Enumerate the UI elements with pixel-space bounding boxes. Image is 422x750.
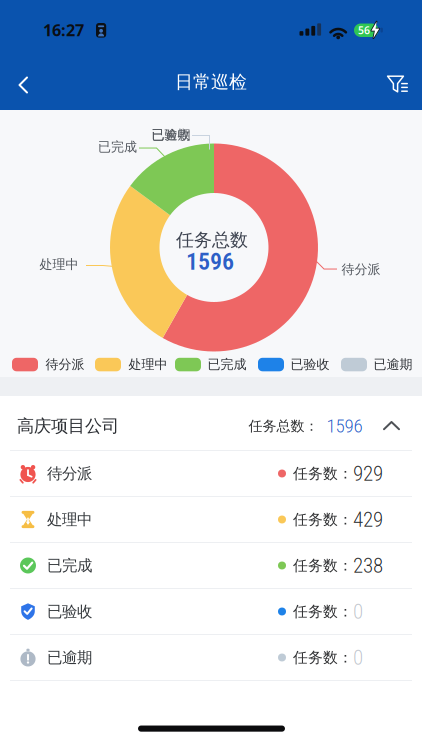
staticText: 0 <box>353 645 363 670</box>
staticText: 高庆项目公司 <box>17 415 119 437</box>
staticText: 处理中 <box>39 256 78 273</box>
staticText: 929 <box>353 461 383 486</box>
staticText: 待分派 <box>47 464 92 483</box>
staticText: 已逾期 <box>373 356 412 373</box>
staticText: 任务数： <box>293 510 353 529</box>
staticText: 已完成 <box>207 356 246 373</box>
staticText: 429 <box>353 507 383 532</box>
button[interactable] <box>380 73 414 95</box>
staticText: 16:27 <box>43 19 84 41</box>
button[interactable]: 待分派 <box>0 451 422 496</box>
staticText: 已验收 <box>151 127 190 143</box>
staticText: 处理中 <box>47 510 92 529</box>
button[interactable]: 已完成 <box>0 543 422 588</box>
staticText: 任务总数： <box>248 417 318 435</box>
staticText: 已验收 <box>47 602 92 621</box>
staticText: 1596 <box>326 415 362 437</box>
button[interactable]: 高庆项目公司 <box>0 396 422 450</box>
button[interactable]: 处理中 <box>0 497 422 542</box>
staticText: 1596 <box>186 247 234 275</box>
button[interactable]: 已验收 <box>0 589 422 634</box>
staticText: 0 <box>353 599 363 624</box>
staticText: 处理中 <box>128 356 167 373</box>
button[interactable] <box>0 68 44 101</box>
staticText: 待分派 <box>45 356 84 373</box>
staticText: 已验收 <box>290 356 329 373</box>
staticText: 任务数： <box>293 602 353 621</box>
staticText: 56 <box>358 23 370 37</box>
staticText: 任务总数 <box>176 229 248 251</box>
staticText: 已逾期 <box>47 648 92 667</box>
staticText: 已完成 <box>47 556 92 575</box>
staticText: 238 <box>353 553 383 578</box>
staticText: 任务数： <box>293 556 353 575</box>
staticText: 任务数： <box>293 648 353 667</box>
staticText: 已完成 <box>98 139 137 155</box>
staticText: 任务数： <box>293 464 353 483</box>
staticText: 日常巡检 <box>175 71 247 93</box>
staticText: 已逾期 <box>151 127 190 143</box>
button[interactable]: 已逾期 <box>0 635 422 680</box>
staticText: 待分派 <box>341 261 380 278</box>
